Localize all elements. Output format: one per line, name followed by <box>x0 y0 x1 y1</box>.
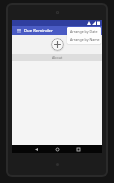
staticText: Due Reminder <box>24 28 53 34</box>
button[interactable]: Arrange by Name <box>67 35 101 44</box>
button[interactable]: Open navigation menu <box>15 27 22 34</box>
button[interactable]: Home <box>53 145 61 153</box>
staticText: Arrange by Name <box>70 37 100 42</box>
button[interactable]: Add reminder <box>51 38 64 51</box>
staticText: Arrange by Date <box>70 29 98 34</box>
staticText: About <box>52 55 63 60</box>
button[interactable]: Recent apps <box>74 145 82 153</box>
button[interactable]: Back <box>32 145 40 153</box>
button[interactable]: Arrange by Date <box>67 27 101 35</box>
